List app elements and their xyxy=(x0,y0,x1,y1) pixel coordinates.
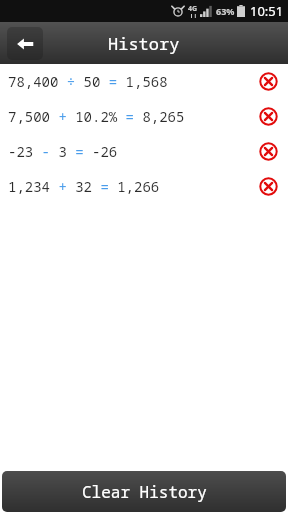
staticText: 10:51 xyxy=(250,2,284,20)
staticText: 1,234 + 32 = 1,266 xyxy=(8,177,160,196)
staticText: 63% xyxy=(216,5,235,17)
button[interactable]: Delete entry xyxy=(248,134,288,169)
button[interactable]: -23 - 3 = -26 xyxy=(0,134,288,169)
button[interactable]: Delete entry xyxy=(248,99,288,134)
staticText: 7,500 + 10.2% = 8,265 xyxy=(8,107,185,126)
staticText: Clear History xyxy=(82,481,207,503)
staticText: History xyxy=(108,32,180,55)
button[interactable]: Delete entry xyxy=(248,169,288,204)
button[interactable]: Delete entry xyxy=(248,64,288,99)
staticText: 78,400 ÷ 50 = 1,568 xyxy=(8,72,168,91)
staticText: 4G xyxy=(188,4,198,14)
button[interactable]: Back xyxy=(7,27,43,60)
button[interactable]: 1,234 + 32 = 1,266 xyxy=(0,169,288,204)
staticText: -23 - 3 = -26 xyxy=(8,142,118,161)
button[interactable]: 78,400 ÷ 50 = 1,568 xyxy=(0,64,288,99)
button[interactable]: Clear History xyxy=(2,471,286,512)
button[interactable]: 7,500 + 10.2% = 8,265 xyxy=(0,99,288,134)
